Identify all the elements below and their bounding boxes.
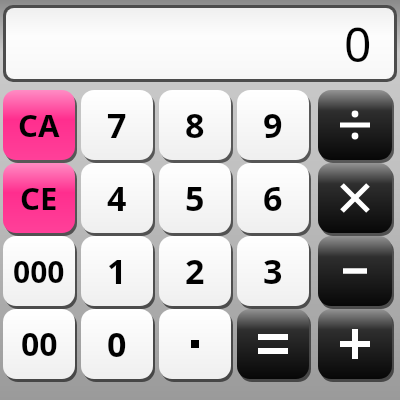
button[interactable]: 00 bbox=[3, 309, 75, 379]
staticText: 3 bbox=[263, 248, 283, 294]
button[interactable]: Multiply bbox=[318, 163, 392, 233]
button[interactable]: 9 bbox=[237, 90, 309, 160]
button[interactable]: 5 bbox=[159, 163, 231, 233]
button[interactable]: CA bbox=[3, 90, 75, 160]
staticText: 0 bbox=[107, 321, 127, 367]
staticText: CE bbox=[20, 177, 58, 219]
staticText: 2 bbox=[185, 248, 205, 294]
button[interactable]: 000 bbox=[3, 236, 75, 306]
button[interactable]: 3 bbox=[237, 236, 309, 306]
button[interactable]: Equals bbox=[237, 309, 309, 379]
button[interactable]: Minus bbox=[318, 236, 392, 306]
button[interactable]: Plus bbox=[318, 309, 392, 379]
button[interactable]: CE bbox=[3, 163, 75, 233]
button[interactable]: 7 bbox=[81, 90, 153, 160]
staticText: 1 bbox=[107, 248, 127, 294]
staticText: 00 bbox=[21, 322, 58, 366]
button[interactable]: Decimal point bbox=[159, 309, 231, 379]
button[interactable]: 4 bbox=[81, 163, 153, 233]
staticText: 4 bbox=[107, 175, 127, 221]
staticText: 0 bbox=[344, 11, 372, 76]
staticText: 000 bbox=[13, 251, 65, 292]
staticText: 8 bbox=[185, 102, 205, 148]
staticText: 9 bbox=[263, 102, 283, 148]
button[interactable]: Divide bbox=[318, 90, 392, 160]
staticText: CA bbox=[18, 104, 60, 146]
button[interactable]: 0 bbox=[81, 309, 153, 379]
staticText: 7 bbox=[107, 102, 127, 148]
button[interactable]: 8 bbox=[159, 90, 231, 160]
button[interactable]: 0 bbox=[3, 5, 397, 82]
button[interactable]: 2 bbox=[159, 236, 231, 306]
staticText: 5 bbox=[185, 175, 205, 221]
staticText: 6 bbox=[263, 175, 283, 221]
button[interactable]: 6 bbox=[237, 163, 309, 233]
button[interactable]: 1 bbox=[81, 236, 153, 306]
